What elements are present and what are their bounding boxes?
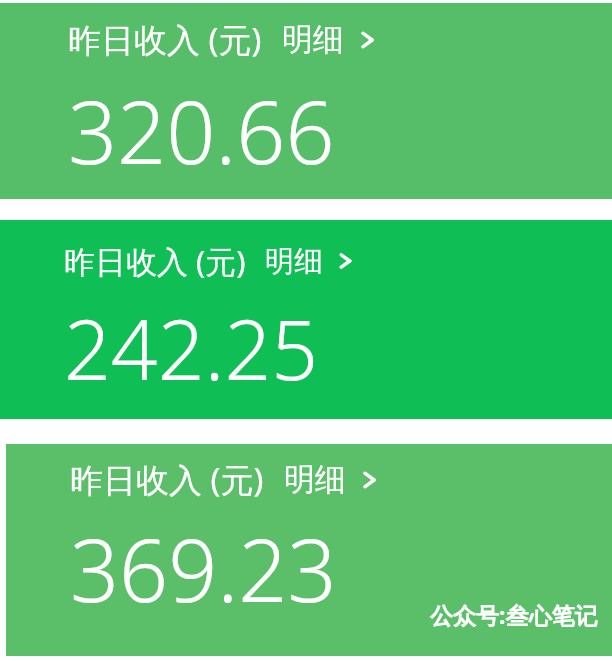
button[interactable]: 昨日收入 (元) bbox=[6, 444, 612, 656]
other: 明细 bbox=[354, 27, 380, 53]
staticText: 320.66 bbox=[68, 72, 335, 189]
button[interactable]: 昨日收入 (元) bbox=[6, 457, 612, 502]
button[interactable]: 昨日收入 (元) bbox=[0, 240, 612, 282]
other: 明细 bbox=[333, 249, 357, 273]
staticText: 369.23 bbox=[70, 510, 337, 627]
staticText: 公众号:叁心笔记 bbox=[430, 599, 598, 630]
button[interactable]: 昨日收入 (元) bbox=[0, 220, 612, 419]
staticText: 242.25 bbox=[64, 292, 319, 404]
staticText: 昨日收入 (元) bbox=[68, 17, 262, 62]
staticText: 昨日收入 (元) bbox=[64, 240, 246, 282]
button[interactable]: 昨日收入 (元) bbox=[0, 3, 612, 199]
staticText: 昨日收入 (元) bbox=[70, 457, 264, 502]
staticText: 明细 bbox=[282, 20, 344, 59]
other: 明细 bbox=[356, 467, 382, 493]
staticText: 明细 bbox=[265, 243, 323, 280]
button[interactable]: 昨日收入 (元) bbox=[0, 17, 612, 62]
staticText: 明细 bbox=[284, 460, 346, 499]
